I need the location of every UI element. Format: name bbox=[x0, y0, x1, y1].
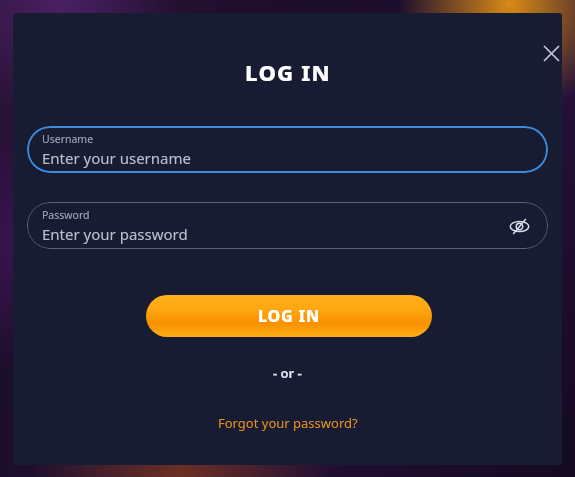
button[interactable]: Forgot your password? bbox=[212, 412, 364, 434]
staticText: Enter your password bbox=[42, 224, 188, 244]
button[interactable]: Close bbox=[535, 37, 562, 69]
button[interactable]: Password bbox=[27, 202, 548, 249]
staticText: Password bbox=[42, 208, 90, 222]
button[interactable]: Username bbox=[27, 126, 548, 173]
staticText: Username bbox=[42, 132, 94, 146]
staticText: Enter your username bbox=[42, 148, 191, 168]
staticText: LOG IN bbox=[245, 57, 331, 87]
button[interactable]: LOG IN bbox=[146, 295, 432, 337]
button[interactable]: Show password bbox=[504, 211, 534, 241]
staticText: Forgot your password? bbox=[218, 414, 358, 432]
staticText: LOG IN bbox=[258, 305, 320, 327]
staticText: - or - bbox=[273, 364, 302, 382]
